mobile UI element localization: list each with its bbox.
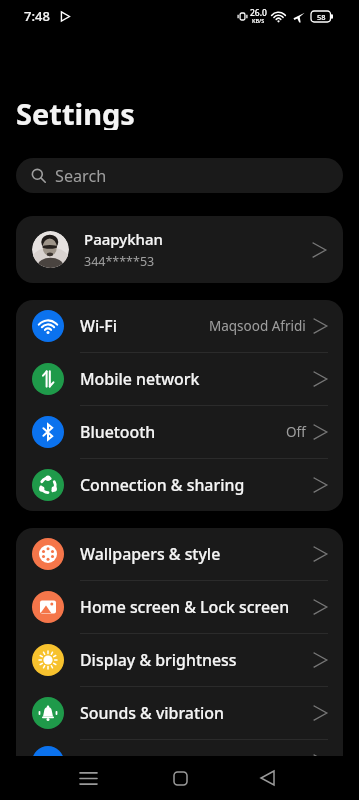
button[interactable]: Paapykhan [16, 216, 343, 283]
button[interactable]: Sounds & vibration [16, 687, 343, 739]
staticText: Home screen & Lock screen [80, 596, 313, 618]
staticText: Sounds & vibration [80, 702, 313, 724]
staticText: Settings [16, 94, 135, 130]
staticText: Off [286, 423, 306, 441]
button[interactable]: Connection & sharing [16, 459, 343, 511]
button[interactable]: Display & brightness [16, 634, 343, 686]
staticText: Bluetooth [80, 421, 286, 443]
staticText: 26.0 [250, 7, 267, 19]
staticText: Connection & sharing [80, 474, 313, 496]
staticText: Wi-Fi [80, 315, 209, 337]
staticText: 58 [317, 12, 326, 22]
staticText: 344*****53 [84, 253, 155, 270]
staticText: KB/S [252, 17, 265, 24]
staticText: Search [55, 165, 107, 187]
button[interactable]: Notifications [16, 740, 343, 784]
staticText: Wallpapers & style [80, 543, 313, 565]
button[interactable]: Recent apps [64, 756, 112, 800]
button[interactable]: Back [243, 756, 291, 800]
staticText: Paapykhan [84, 229, 164, 249]
staticText: 7:48 [24, 7, 50, 25]
button[interactable]: Bluetooth [16, 406, 343, 458]
staticText: Mobile network [80, 368, 313, 390]
button[interactable]: Search [16, 158, 343, 193]
staticText: Notifications [80, 751, 313, 773]
button[interactable]: Wi-Fi [16, 300, 343, 352]
button[interactable]: Home screen & Lock screen [16, 581, 343, 633]
button[interactable]: Mobile network [16, 353, 343, 405]
button[interactable]: Wallpapers & style [16, 528, 343, 580]
staticText: Display & brightness [80, 649, 313, 671]
button[interactable]: Home [156, 756, 204, 800]
staticText: Maqsood Afridi [209, 317, 306, 335]
